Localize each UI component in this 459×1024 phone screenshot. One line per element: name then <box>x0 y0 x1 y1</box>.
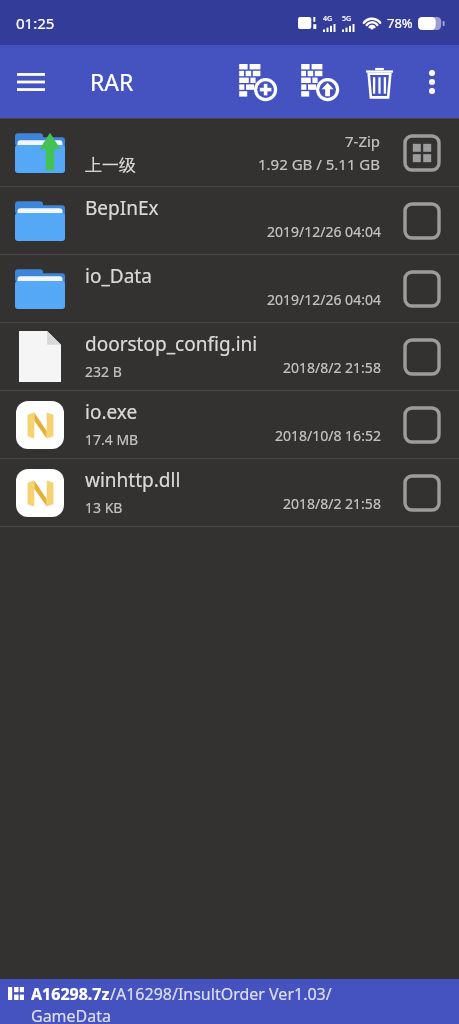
staticText: 4G <box>323 14 333 24</box>
staticText: winhttp.dll <box>85 467 181 493</box>
staticText: RAR <box>90 66 134 97</box>
staticText: 1.92 GB / 5.11 GB <box>258 154 381 174</box>
staticText: io_Data <box>85 263 152 289</box>
staticText: 7-Zip <box>345 131 381 151</box>
staticText: /A16298/InsultOrder Ver1.03/ <box>110 983 332 1005</box>
staticText: GameData <box>31 1005 112 1024</box>
button[interactable]: A16298.7z <box>0 979 459 1024</box>
staticText: A16298.7z <box>31 983 110 1005</box>
button[interactable]: Select item <box>385 187 459 254</box>
button[interactable]: Select item <box>385 255 459 322</box>
button[interactable]: Extract archive <box>289 51 351 113</box>
button[interactable]: More options <box>407 57 457 107</box>
button[interactable]: winhttp.dll <box>0 459 459 526</box>
button[interactable]: Add to archive <box>227 51 289 113</box>
staticText: 2019/12/26 04:04 <box>267 222 381 241</box>
button[interactable]: Select item <box>385 459 459 526</box>
button[interactable]: BepInEx <box>0 187 459 254</box>
button[interactable]: Change view <box>385 119 459 186</box>
staticText: 78% <box>387 14 413 32</box>
staticText: io.exe <box>85 399 138 425</box>
staticText: 17.4 MB <box>85 430 139 449</box>
button[interactable]: 上一级 <box>0 119 459 186</box>
staticText: doorstop_config.ini <box>85 331 258 357</box>
button[interactable]: Delete <box>351 54 407 110</box>
staticText: 2018/10/8 16:52 <box>275 426 381 445</box>
button[interactable]: Select item <box>385 323 459 390</box>
staticText: BepInEx <box>85 195 159 221</box>
staticText: 01:25 <box>16 13 55 33</box>
button[interactable]: doorstop_config.ini <box>0 323 459 390</box>
staticText: 上一级 <box>85 155 136 176</box>
button[interactable]: Menu <box>0 51 62 113</box>
staticText: 2018/8/2 21:58 <box>283 358 381 377</box>
button[interactable]: io.exe <box>0 391 459 458</box>
button[interactable]: Select item <box>385 391 459 458</box>
staticText: 2019/12/26 04:04 <box>267 290 381 309</box>
staticText: 5G <box>342 14 352 24</box>
staticText: 13 KB <box>85 498 123 517</box>
button[interactable]: io_Data <box>0 255 459 322</box>
staticText: 232 B <box>85 362 122 381</box>
staticText: 2018/8/2 21:58 <box>283 494 381 513</box>
